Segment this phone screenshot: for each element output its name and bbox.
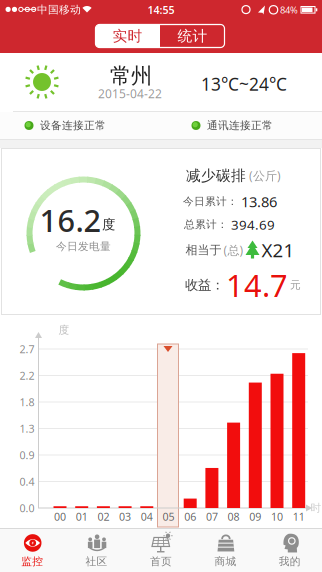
staticText: 0.9: [19, 448, 34, 462]
staticText: 16.2: [39, 200, 101, 240]
staticText: (公斤): [249, 167, 281, 183]
button[interactable]: 我的: [258, 528, 322, 572]
staticText: 我的: [279, 555, 301, 568]
staticText: 00: [54, 509, 66, 524]
staticText: 11: [293, 509, 305, 524]
staticText: X21: [261, 238, 294, 262]
staticText: 14.7: [226, 265, 288, 305]
staticText: 元: [290, 278, 301, 291]
staticText: 394.69: [231, 216, 275, 233]
button[interactable]: 统计: [160, 24, 224, 47]
staticText: 减少碳排: [186, 166, 246, 184]
staticText: 社区: [86, 555, 108, 568]
staticText: 02: [97, 509, 109, 524]
staticText: 2.2: [19, 368, 34, 383]
staticText: 08: [228, 509, 240, 524]
staticText: 中国移动: [37, 3, 81, 16]
staticText: 总累计：: [184, 218, 228, 231]
staticText: 今日发电量: [56, 240, 111, 253]
staticText: 0.4: [19, 474, 34, 489]
staticText: 度: [58, 323, 69, 336]
staticText: 度: [102, 216, 115, 233]
staticText: 07: [206, 509, 218, 524]
staticText: 通讯连接正常: [207, 119, 273, 132]
staticText: 商城: [214, 555, 236, 568]
staticText: 01: [76, 509, 88, 524]
button[interactable]: 监控: [0, 528, 64, 572]
staticText: 时: [310, 501, 321, 514]
staticText: 2015-04-22: [98, 85, 162, 101]
staticText: 04: [141, 509, 153, 524]
staticText: 13.86: [241, 192, 277, 211]
staticText: 监控: [21, 555, 43, 568]
staticText: 常州: [110, 63, 152, 89]
staticText: 1.8: [19, 395, 34, 409]
staticText: 1.3: [19, 421, 34, 436]
staticText: 收益：: [185, 277, 224, 293]
staticText: 13°C~24°C: [201, 72, 287, 95]
staticText: 03: [119, 509, 131, 524]
staticText: 10: [271, 509, 283, 524]
staticText: 相当于: [185, 243, 221, 257]
staticText: 05: [162, 509, 174, 524]
button[interactable]: 商城: [193, 528, 257, 572]
staticText: 今日累计：: [183, 195, 238, 208]
button[interactable]: 实时: [95, 24, 159, 47]
staticText: 09: [249, 509, 261, 524]
button[interactable]: 社区: [65, 528, 129, 572]
button[interactable]: 首页: [129, 528, 193, 572]
staticText: (总): [223, 242, 243, 258]
staticText: 84%: [280, 4, 298, 16]
staticText: 设备连接正常: [40, 119, 106, 132]
staticText: 0.0: [19, 501, 34, 515]
staticText: 14:55: [147, 3, 174, 17]
staticText: 06: [184, 509, 196, 524]
staticText: 实时: [112, 27, 142, 45]
staticText: 2.7: [19, 342, 34, 356]
staticText: 统计: [177, 27, 207, 45]
staticText: 首页: [150, 555, 172, 568]
